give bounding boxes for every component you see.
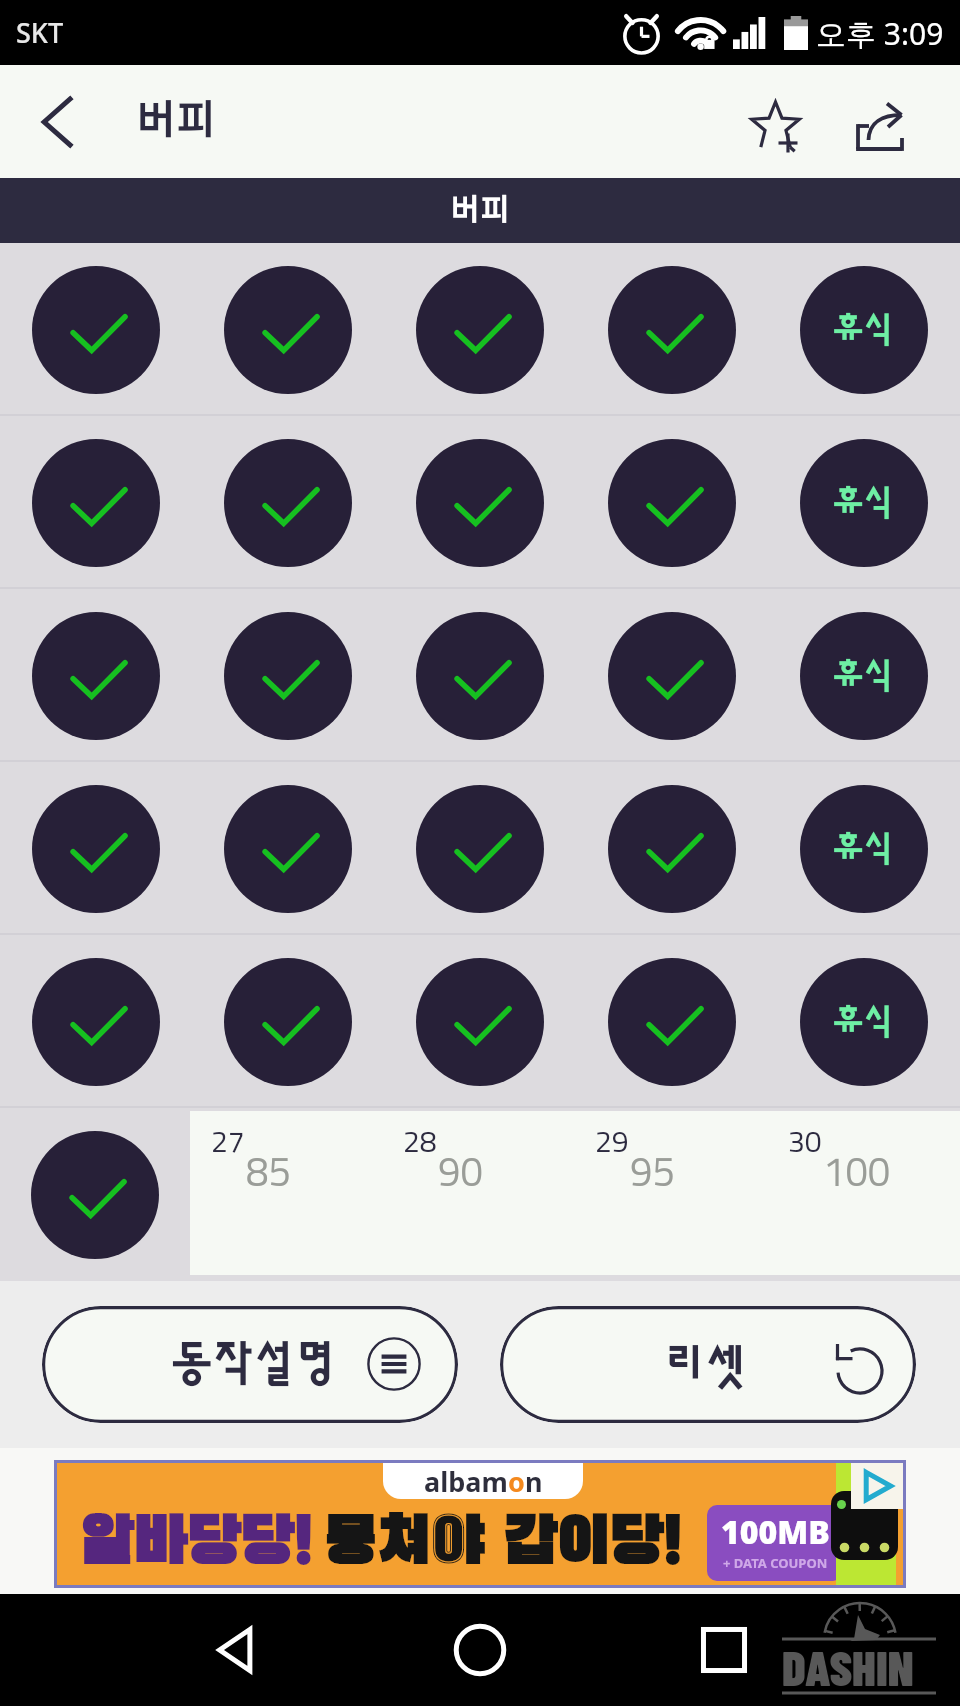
button[interactable]: Completed set (416, 785, 544, 913)
button[interactable]: Completed set (224, 958, 352, 1086)
staticText: 뭉쳐야 갑이당! (324, 1512, 683, 1576)
button[interactable]: Home (432, 1602, 528, 1698)
button[interactable]: Completed set (224, 785, 352, 913)
button[interactable]: Completed set (32, 439, 160, 567)
staticText: 100MB (721, 1510, 830, 1554)
staticText: 30 (788, 1129, 822, 1159)
button[interactable]: Completed set (32, 958, 160, 1086)
button[interactable]: Completed set (608, 958, 736, 1086)
staticText: 버피 (136, 102, 216, 142)
button[interactable]: Rest (800, 266, 928, 394)
button[interactable]: 27 (190, 1111, 382, 1275)
staticText: 휴식 (833, 486, 895, 520)
staticText: o (508, 1463, 525, 1499)
staticText: SKT (16, 14, 64, 51)
button[interactable]: Rest (800, 612, 928, 740)
staticText: 휴식 (833, 1005, 895, 1039)
button[interactable]: Completed set (608, 266, 736, 394)
staticText: 95 (630, 1155, 675, 1195)
staticText: 28 (403, 1129, 437, 1159)
button[interactable]: Completed set (31, 1131, 159, 1259)
button[interactable]: Completed set (416, 958, 544, 1086)
button[interactable]: Completed set (32, 612, 160, 740)
staticText: 동작설명 (171, 1341, 337, 1387)
staticText: 100 (823, 1155, 891, 1195)
button[interactable]: 리셋 (500, 1306, 916, 1423)
button[interactable]: Completed set (32, 266, 160, 394)
button[interactable]: Completed set (416, 266, 544, 394)
button[interactable]: Recent apps (676, 1602, 772, 1698)
button[interactable]: Back (24, 86, 96, 158)
button[interactable]: Rest (800, 785, 928, 913)
button[interactable]: Completed set (224, 439, 352, 567)
staticText: 27 (211, 1129, 245, 1159)
button[interactable]: Rest (800, 958, 928, 1086)
button[interactable]: Completed set (224, 612, 352, 740)
button[interactable]: Completed set (608, 439, 736, 567)
staticText: 10:09 (851, 1497, 880, 1512)
staticText: 29 (595, 1129, 629, 1159)
button[interactable]: 동작설명 (42, 1306, 458, 1423)
button[interactable]: 29 (574, 1111, 767, 1275)
staticText: 버피 (450, 196, 510, 226)
button[interactable]: Completed set (32, 785, 160, 913)
staticText: 알바당당! (80, 1512, 314, 1576)
button[interactable]: Add to favorites (733, 65, 819, 178)
staticText: 휴식 (833, 832, 895, 866)
button[interactable]: Rest (800, 439, 928, 567)
staticText: 85 (246, 1155, 291, 1195)
button[interactable]: Completed set (224, 266, 352, 394)
button[interactable]: Completed set (416, 612, 544, 740)
staticText: 오후 3:09 (816, 13, 944, 54)
button[interactable]: 30 (767, 1111, 960, 1275)
button[interactable]: Completed set (416, 439, 544, 567)
staticText: 휴식 (833, 659, 895, 693)
staticText: 90 (438, 1155, 483, 1195)
button[interactable]: Share (839, 65, 925, 178)
staticText: 리셋 (664, 1345, 747, 1391)
button[interactable]: Completed set (608, 612, 736, 740)
button[interactable]: Advertisement (57, 1463, 903, 1585)
staticText: DASHIN (782, 1637, 914, 1696)
button[interactable]: Back (190, 1602, 286, 1698)
staticText: n (525, 1463, 543, 1499)
staticText: albam (424, 1463, 508, 1499)
button[interactable]: 28 (382, 1111, 574, 1275)
button[interactable]: Completed set (608, 785, 736, 913)
staticText: 휴식 (833, 313, 895, 347)
staticText: + DATA COUPON (723, 1554, 828, 1572)
